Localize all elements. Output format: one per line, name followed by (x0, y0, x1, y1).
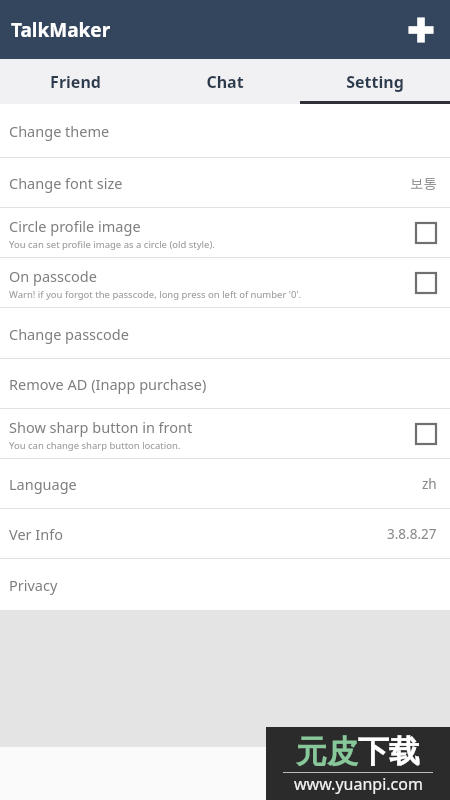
button[interactable]: Ver Info (0, 509, 450, 559)
staticText: Change font size (9, 173, 123, 193)
button[interactable]: Add (400, 9, 442, 51)
button[interactable]: Change theme (0, 104, 450, 158)
staticText: 下载 (358, 732, 420, 771)
staticText: Change passcode (9, 324, 129, 344)
staticText: Chat (206, 71, 244, 93)
staticText: Ver Info (9, 524, 63, 544)
staticText: Setting (346, 71, 404, 93)
staticText: Remove AD (Inapp purchase) (9, 374, 207, 394)
staticText: You can set profile image as a circle (o… (9, 238, 215, 251)
staticText: 元皮 (296, 732, 358, 771)
button[interactable]: Chat (150, 59, 300, 104)
button[interactable]: Circle profile image (0, 208, 450, 258)
staticText: Language (9, 474, 77, 494)
staticText: TalkMaker (11, 17, 111, 43)
button[interactable]: Setting (300, 59, 450, 104)
staticText: 보통 (410, 175, 437, 192)
button[interactable]: Show sharp button in front (0, 409, 450, 459)
staticText: 3.8.8.27 (387, 525, 437, 543)
button[interactable]: Language (0, 459, 450, 509)
staticText: Warn! if you forgot the passcode, long p… (9, 288, 302, 301)
staticText: Privacy (9, 575, 58, 595)
button[interactable]: Privacy (0, 559, 450, 611)
button[interactable]: On passcode (0, 258, 450, 308)
staticText: Change theme (9, 121, 110, 141)
staticText: Friend (50, 71, 101, 93)
staticText: zh (422, 475, 437, 493)
button[interactable]: Remove AD (Inapp purchase) (0, 359, 450, 409)
staticText: You can change sharp button location. (9, 439, 181, 452)
staticText: On passcode (9, 266, 97, 286)
button[interactable]: Friend (0, 59, 150, 104)
staticText: Show sharp button in front (9, 417, 193, 437)
staticText: www.yuanpi.com (294, 773, 423, 795)
staticText: Circle profile image (9, 216, 141, 236)
button[interactable]: Change font size (0, 158, 450, 208)
button[interactable]: Change passcode (0, 308, 450, 359)
